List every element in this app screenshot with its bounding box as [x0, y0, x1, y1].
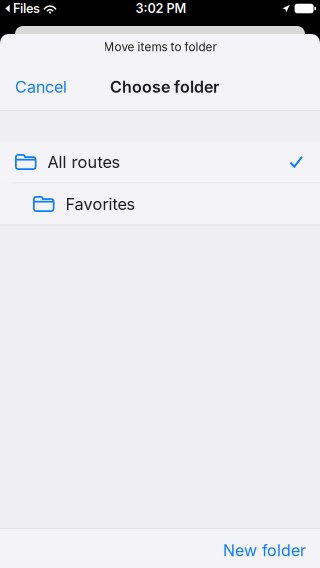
staticText: New folder	[223, 541, 306, 560]
staticText: Cancel	[15, 77, 67, 97]
staticText: Move items to folder	[103, 40, 216, 54]
staticText: All routes	[47, 152, 120, 172]
staticText: 3:02 PM	[135, 1, 186, 16]
staticText: Favorites	[65, 194, 135, 214]
staticText: Files	[13, 1, 40, 16]
button[interactable]: All routes	[0, 141, 320, 182]
button[interactable]: Favorites	[0, 183, 320, 224]
staticText: Choose folder	[110, 77, 219, 97]
button[interactable]: New folder	[216, 529, 320, 568]
button[interactable]: Cancel	[0, 60, 74, 110]
